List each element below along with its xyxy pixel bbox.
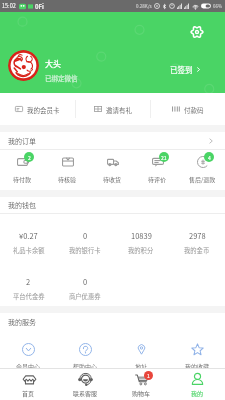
button[interactable]: 2: [0, 260, 57, 306]
button[interactable]: Settings: [190, 25, 204, 39]
staticText: 66%: [213, 3, 223, 10]
staticText: ¥0.27: [19, 230, 38, 241]
staticText: 已签到: [170, 64, 193, 75]
button[interactable]: 4: [180, 150, 225, 190]
staticText: 0: [83, 276, 88, 287]
staticText: 联系客服: [73, 389, 98, 398]
button[interactable]: Avatar: [8, 50, 39, 81]
staticText: 我的收藏: [185, 362, 210, 371]
staticText: 待评价: [148, 175, 167, 184]
button[interactable]: 0: [57, 214, 113, 260]
staticText: 商户优惠券: [69, 292, 101, 301]
button[interactable]: Help center: [57, 330, 113, 374]
button[interactable]: Favorites: [169, 330, 225, 374]
staticText: 已绑定微信: [45, 73, 78, 82]
button[interactable]: 我的钱包: [8, 197, 225, 213]
staticText: 大头: [45, 58, 61, 70]
staticText: 待收货: [103, 175, 122, 184]
staticText: 我的会员卡: [27, 105, 60, 114]
button[interactable]: 2978: [169, 214, 225, 260]
staticText: 0.28K/s: [136, 3, 152, 10]
button[interactable]: 待核验: [45, 150, 90, 190]
staticText: 我的服务: [8, 317, 36, 327]
staticText: 我的银行卡: [69, 246, 101, 255]
button[interactable]: Member center: [0, 330, 57, 374]
button[interactable]: 我的: [169, 369, 225, 400]
staticText: 2: [26, 276, 31, 287]
staticText: 0Fi: [35, 2, 44, 11]
button[interactable]: 已签到: [170, 62, 202, 76]
button[interactable]: 2: [0, 150, 45, 190]
button[interactable]: 待收货: [90, 150, 135, 190]
staticText: 15:02: [2, 2, 16, 10]
staticText: 礼品卡余额: [13, 246, 45, 255]
staticText: 我的积分: [128, 246, 154, 255]
button[interactable]: 10839: [113, 214, 169, 260]
staticText: 我的金币: [184, 246, 210, 255]
staticText: 首页: [22, 389, 35, 398]
button[interactable]: 0: [57, 260, 113, 306]
button[interactable]: 21: [135, 150, 180, 190]
button[interactable]: Address: [113, 330, 169, 374]
staticText: 平台代金券: [13, 292, 45, 301]
staticText: 付款码: [184, 105, 204, 114]
staticText: 10839: [131, 230, 152, 241]
staticText: 售后/退款: [189, 175, 216, 184]
staticText: 购物车: [132, 389, 151, 398]
staticText: 4: [208, 154, 211, 161]
staticText: 1: [147, 372, 150, 379]
staticText: 2: [28, 154, 31, 161]
staticText: 待付款: [13, 175, 32, 184]
staticText: 帮助中心: [73, 362, 98, 371]
staticText: 待核验: [58, 175, 77, 184]
staticText: 地址: [135, 362, 148, 371]
staticText: 2978: [189, 230, 206, 241]
staticText: 0: [83, 230, 88, 241]
button[interactable]: 联系客服: [57, 369, 113, 400]
staticText: 我的: [191, 389, 204, 398]
staticText: 21: [161, 154, 167, 161]
staticText: 我的订单: [8, 136, 36, 146]
staticText: 会员中心: [16, 362, 41, 371]
button[interactable]: 我的订单: [8, 132, 215, 149]
button[interactable]: ¥0.27: [0, 214, 57, 260]
button[interactable]: 我的会员卡: [0, 93, 75, 125]
staticText: 我的钱包: [8, 200, 36, 210]
staticText: 邀请有礼: [106, 105, 132, 114]
button[interactable]: 邀请有礼: [76, 93, 150, 125]
button[interactable]: 付款码: [151, 93, 225, 125]
button[interactable]: 首页: [0, 369, 57, 400]
button[interactable]: 1: [113, 369, 169, 400]
